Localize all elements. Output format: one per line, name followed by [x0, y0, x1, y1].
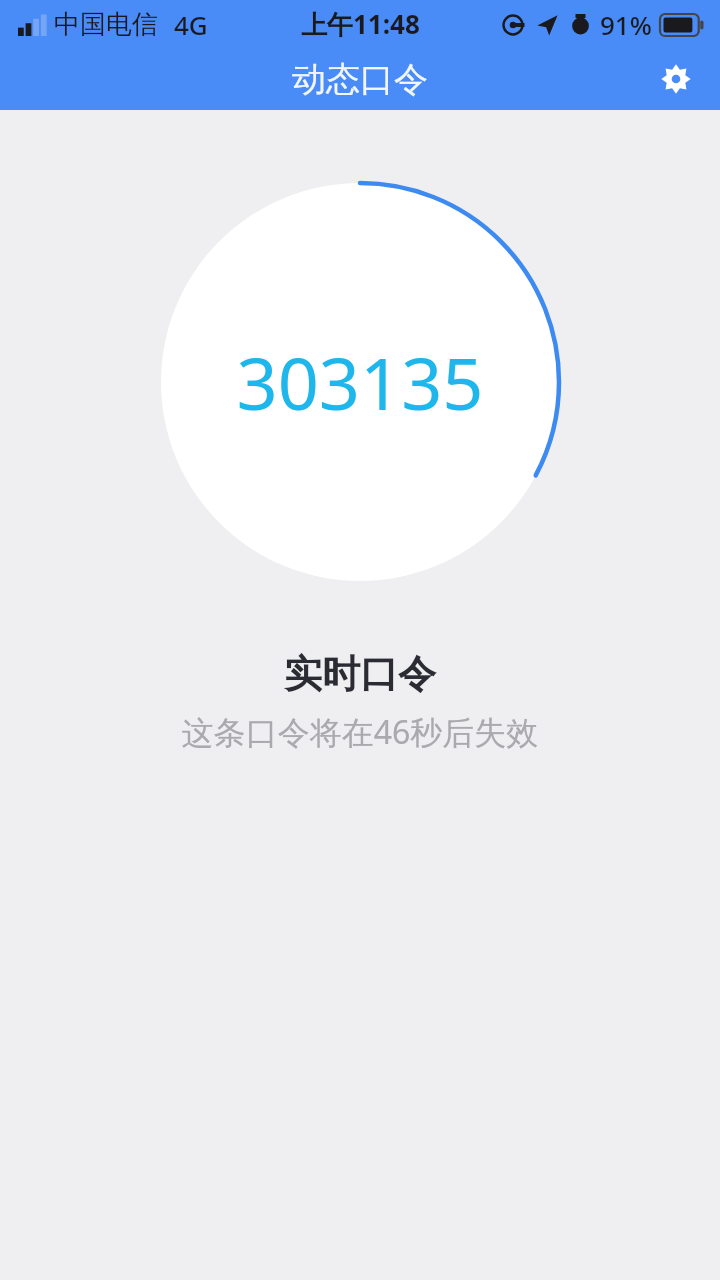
staticText: 4G — [174, 7, 208, 42]
staticText: 实时口令 — [0, 650, 720, 698]
button[interactable]: Settings — [652, 55, 700, 103]
staticText: 中国电信 — [54, 8, 158, 41]
staticText: 动态口令 — [292, 58, 428, 101]
staticText: 91% — [600, 7, 652, 42]
staticText: 这条口令将在46秒后失效 — [0, 710, 720, 754]
staticText: 303135 — [236, 333, 484, 431]
staticText: 上午11:48 — [301, 6, 420, 42]
